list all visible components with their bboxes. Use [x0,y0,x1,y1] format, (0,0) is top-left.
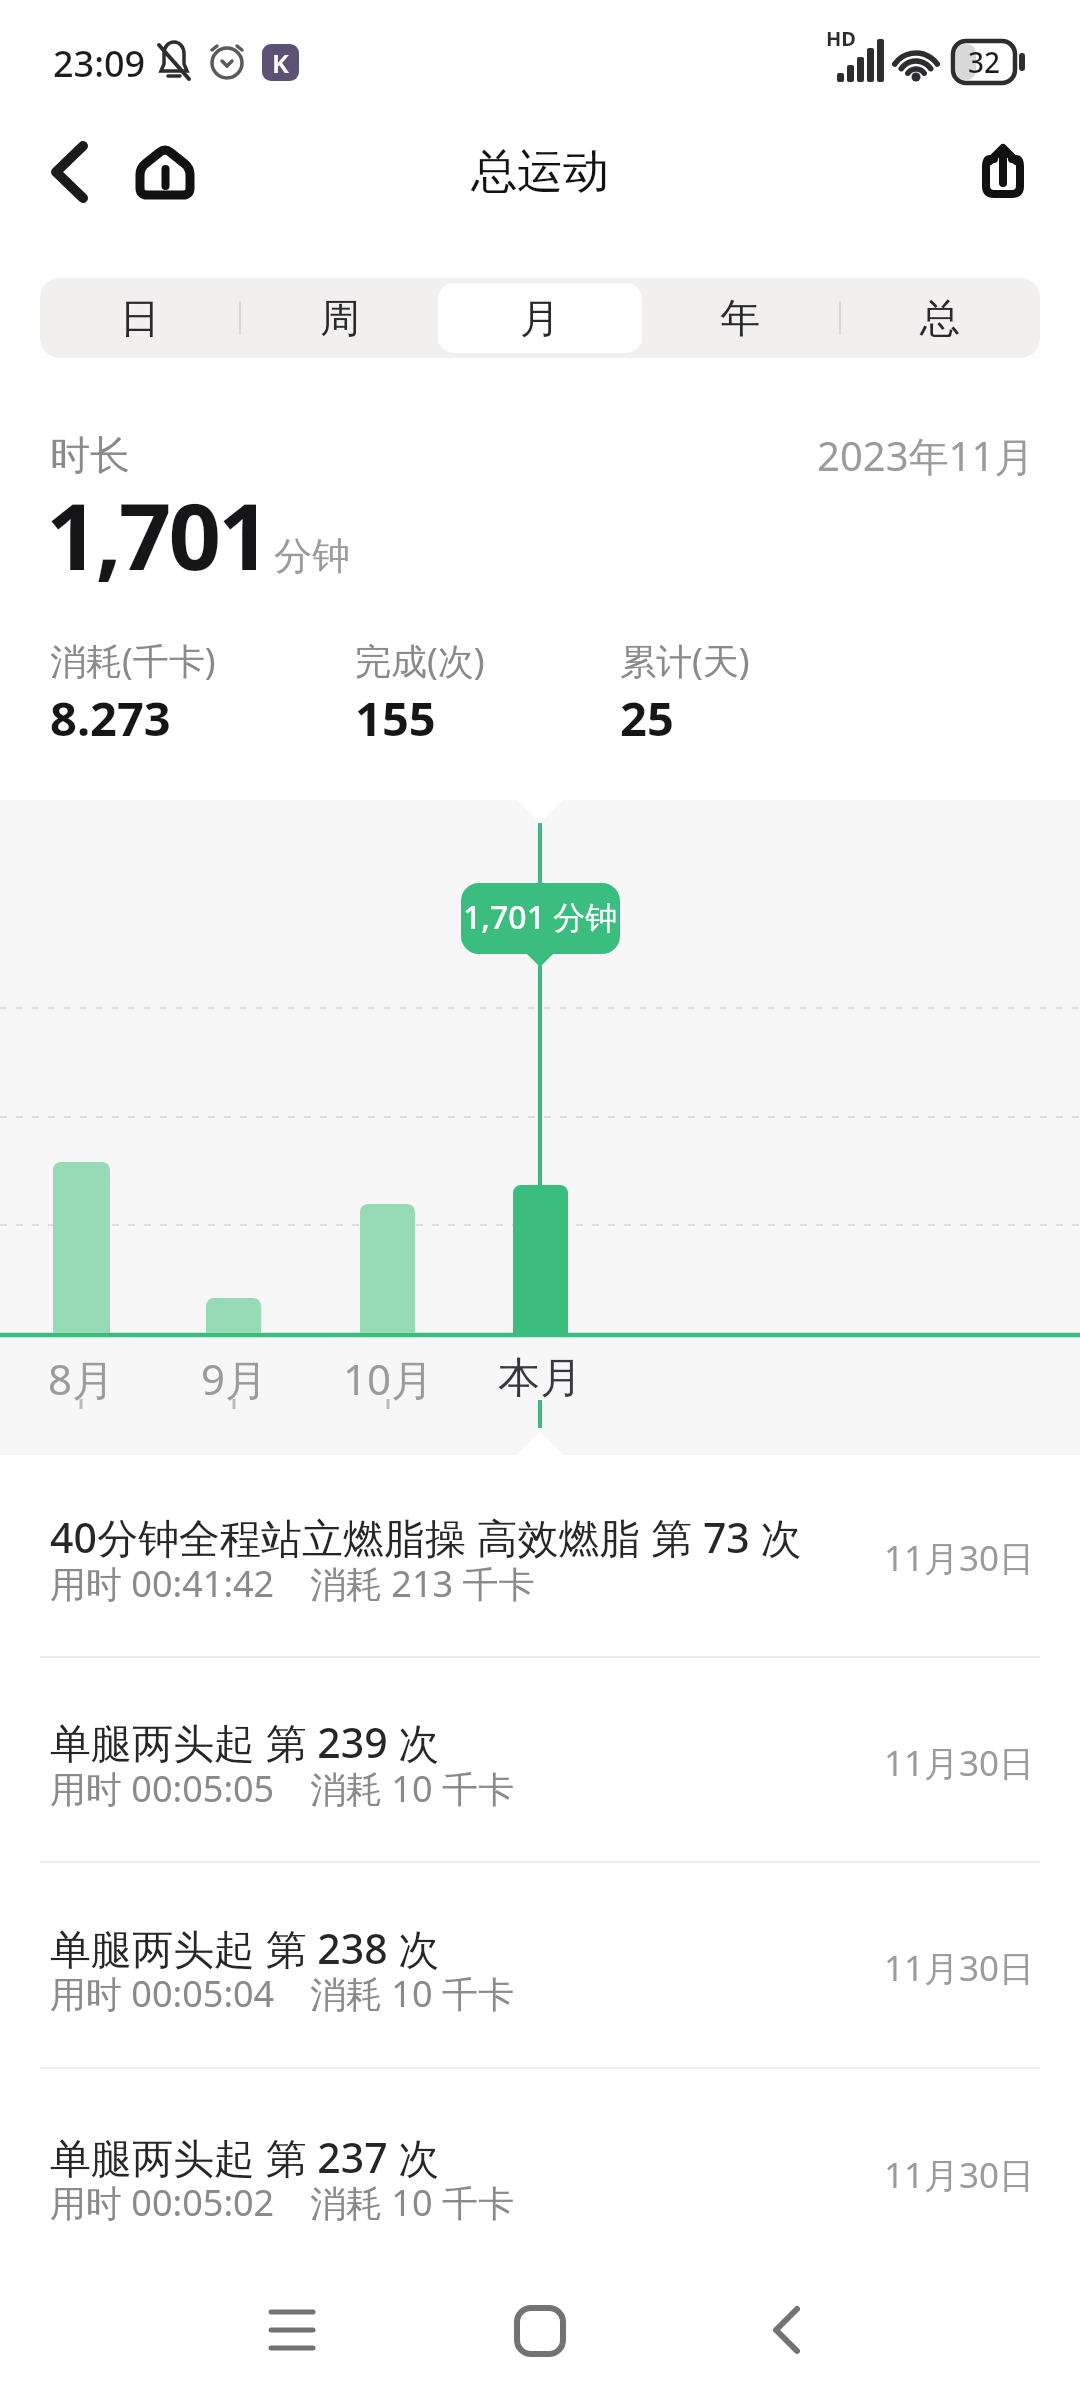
button[interactable]: 年 [640,278,840,358]
button[interactable] [480,2270,600,2390]
staticText: 11月30日 [884,1944,1035,1992]
button[interactable] [125,132,205,212]
staticText: 单腿两头起 第 239 次 [50,1714,440,1770]
staticText: 8月 [48,1350,115,1407]
button[interactable] [30,132,110,212]
staticText: 消耗 10 千卡 [310,1764,514,1813]
staticText: 单腿两头起 第 238 次 [50,1920,440,1976]
staticText: 时长 [50,430,130,480]
staticText: 消耗 10 千卡 [310,2178,514,2227]
staticText: 本月 [498,1352,582,1405]
staticText: 11月30日 [884,1534,1035,1582]
staticText: 25 [620,686,674,750]
staticText: 11月30日 [884,1739,1035,1787]
staticText: 11月30日 [884,2151,1035,2199]
button[interactable] [232,2270,352,2390]
staticText: 周 [320,293,360,343]
staticText: 累计(天) [620,636,750,685]
staticText: 日 [120,293,160,343]
staticText: 40分钟全程站立燃脂操 高效燃脂 第 73 次 [50,1509,802,1565]
staticText: 1,701 分钟 [463,895,618,939]
button[interactable] [0,1659,1080,1862]
staticText: 完成(次) [355,636,485,685]
staticText: 总 [920,293,960,343]
staticText: 23:09 [53,39,146,88]
staticText: 用时 00:05:05 [50,1764,275,1813]
button[interactable] [727,2270,847,2390]
staticText: 10月 [343,1350,434,1407]
button[interactable]: 日 [40,278,240,358]
staticText: HD [826,25,856,52]
staticText: 单腿两头起 第 237 次 [50,2129,440,2185]
staticText: 155 [355,686,436,750]
button[interactable] [0,2070,1080,2275]
staticText: 8.273 [50,686,171,750]
staticText: 2023年11月 [817,428,1035,483]
staticText: 消耗 10 千卡 [310,1969,514,2018]
button[interactable] [0,1455,1080,1657]
staticText: 消耗 213 千卡 [310,1559,535,1608]
button[interactable]: 月 [440,278,640,358]
staticText: 年 [720,293,760,343]
button[interactable]: 周 [240,278,440,358]
staticText: 1,701 [46,472,268,597]
staticText: 32 [968,43,1001,81]
button[interactable] [962,132,1042,212]
staticText: 月 [520,293,560,343]
staticText: 总运动 [471,143,609,201]
staticText: 用时 00:05:02 [50,2178,275,2227]
button[interactable] [0,1864,1080,2068]
button[interactable]: 总 [840,278,1040,358]
staticText: 分钟 [274,532,350,580]
staticText: 用时 00:41:42 [50,1559,275,1608]
staticText: 消耗(千卡) [50,636,216,685]
staticText: 9月 [201,1350,268,1407]
staticText: 用时 00:05:04 [50,1969,275,2018]
staticText: K [272,45,289,80]
